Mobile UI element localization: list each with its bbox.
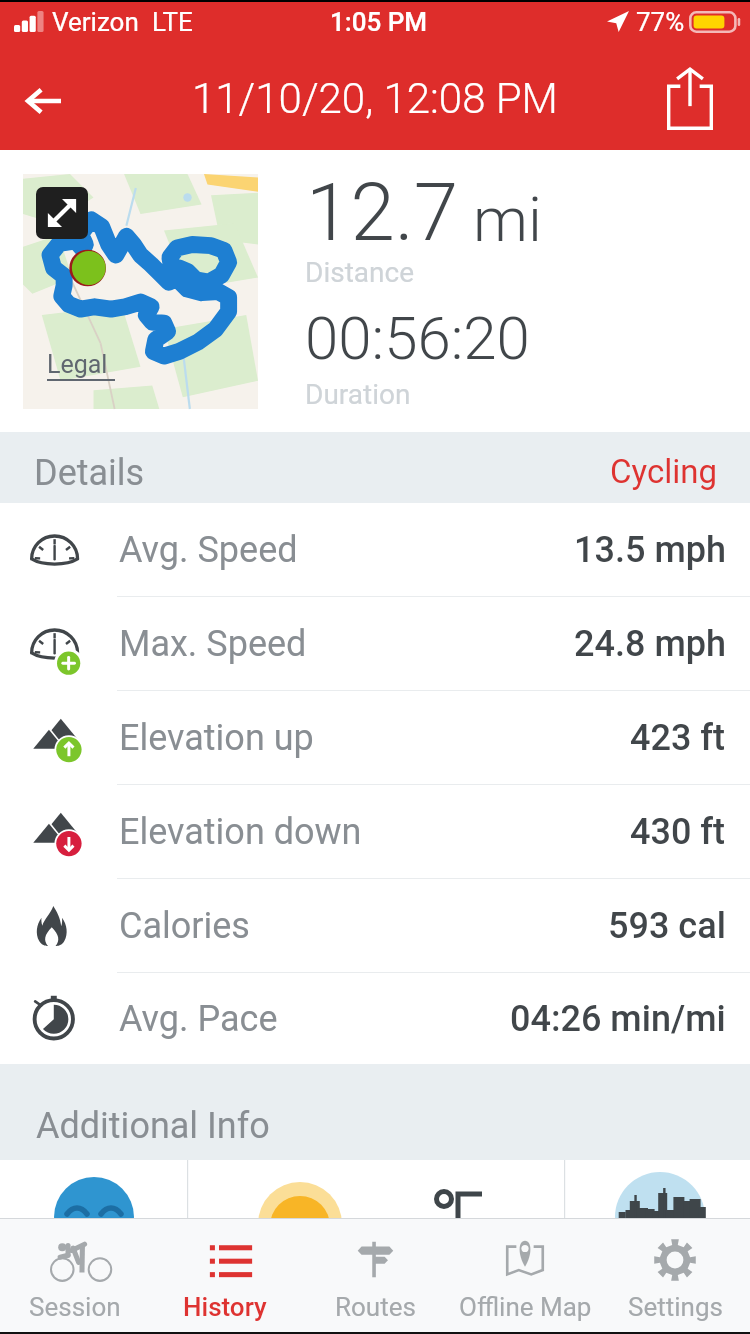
staticText: 13.5 mph xyxy=(574,529,726,571)
staticText: 593 cal xyxy=(608,905,726,947)
button[interactable]: Max. Speed xyxy=(0,597,750,691)
staticText: 1:05 PM xyxy=(330,7,428,37)
button[interactable]: Avg. Speed xyxy=(0,503,750,597)
staticText: Details xyxy=(34,452,145,494)
button[interactable]: Weather xyxy=(0,1160,187,1218)
button[interactable]: Air quality xyxy=(562,1160,750,1218)
staticText: History xyxy=(183,1292,267,1322)
staticText: Legal xyxy=(47,350,108,379)
staticText: Calories xyxy=(119,905,250,947)
button[interactable]: Elevation down xyxy=(0,785,750,879)
button[interactable]: Session xyxy=(0,1219,150,1332)
staticText: Settings xyxy=(628,1292,723,1322)
staticText: LTE xyxy=(152,7,193,37)
staticText: Max. Speed xyxy=(119,623,307,665)
staticText: 04:26 min/mi xyxy=(510,998,726,1040)
staticText: 430 ft xyxy=(630,811,726,853)
button[interactable]: Settings xyxy=(600,1219,750,1332)
staticText: Session xyxy=(29,1292,121,1322)
staticText: 423 ft xyxy=(630,717,726,759)
staticText: Routes xyxy=(335,1292,416,1322)
button[interactable]: Elevation up xyxy=(0,691,750,785)
staticText: 24.8 mph xyxy=(574,623,726,665)
staticText: 77% xyxy=(636,7,685,37)
staticText: Avg. Pace xyxy=(119,998,278,1040)
button[interactable]: Back xyxy=(8,65,80,137)
button[interactable]: Share xyxy=(654,63,726,135)
button[interactable]: Sunrise xyxy=(187,1160,374,1218)
staticText: Avg. Speed xyxy=(119,529,298,571)
button[interactable]: Offline Map xyxy=(450,1219,600,1332)
staticText: Elevation up xyxy=(119,717,314,759)
staticText: Additional Info xyxy=(36,1105,270,1147)
button[interactable]: Calories xyxy=(0,879,750,973)
staticText: Duration xyxy=(305,378,411,411)
staticText: Elevation down xyxy=(119,811,362,853)
staticText: Distance xyxy=(305,256,414,289)
staticText: Verizon xyxy=(52,7,139,37)
staticText: 11/10/20, 12:08 PM xyxy=(192,74,558,123)
button[interactable]: Routes xyxy=(300,1219,450,1332)
staticText: 00:56:20 xyxy=(305,303,530,373)
button[interactable]: Temperature xyxy=(374,1160,562,1218)
button[interactable]: Expand map xyxy=(36,187,88,239)
staticText: Cycling xyxy=(610,452,717,491)
staticText: Offline Map xyxy=(459,1292,592,1322)
button[interactable]: Avg. Pace xyxy=(0,973,750,1064)
button[interactable]: History xyxy=(150,1219,300,1332)
button[interactable]: Route map xyxy=(23,174,258,409)
staticText: 12.7 xyxy=(306,166,459,260)
staticText: mi xyxy=(473,183,542,256)
